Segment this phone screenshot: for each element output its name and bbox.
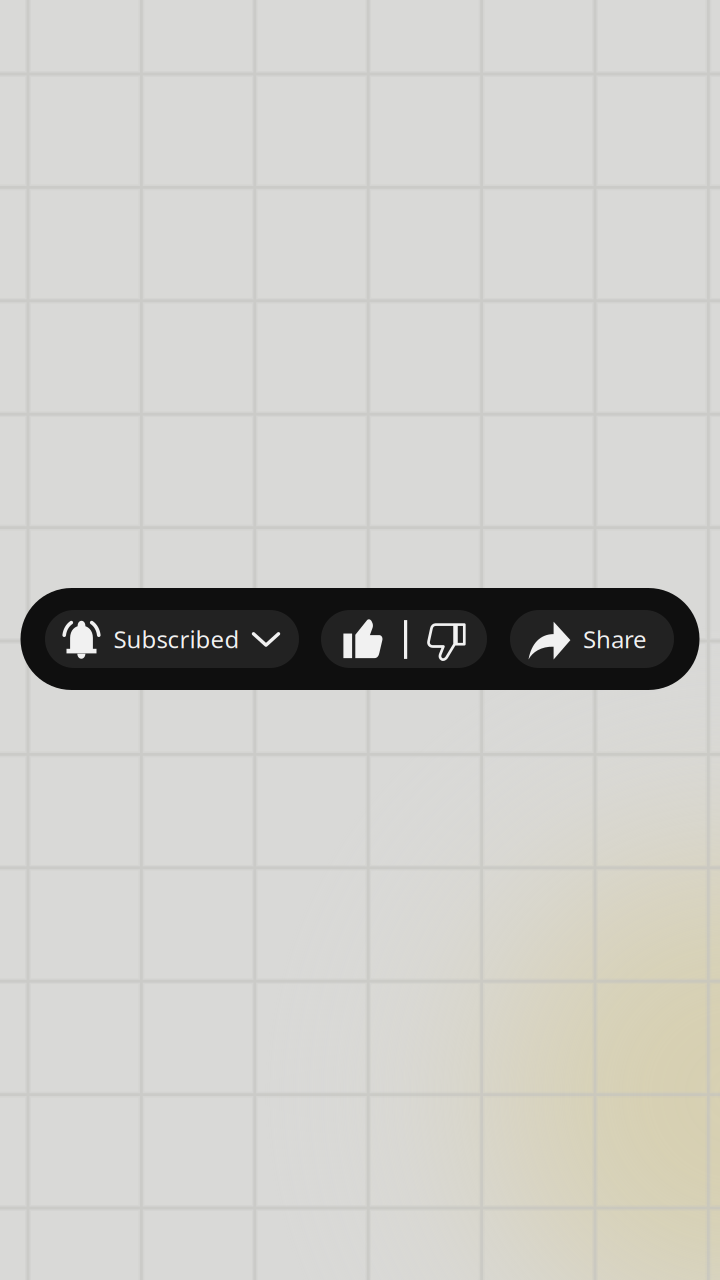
button[interactable]: Subscribed [45, 610, 299, 668]
button[interactable]: Like [321, 610, 404, 668]
button[interactable]: Dislike [407, 610, 487, 668]
button[interactable]: Share [510, 610, 674, 668]
staticText: Share [583, 623, 647, 655]
staticText: Subscribed [113, 623, 239, 655]
